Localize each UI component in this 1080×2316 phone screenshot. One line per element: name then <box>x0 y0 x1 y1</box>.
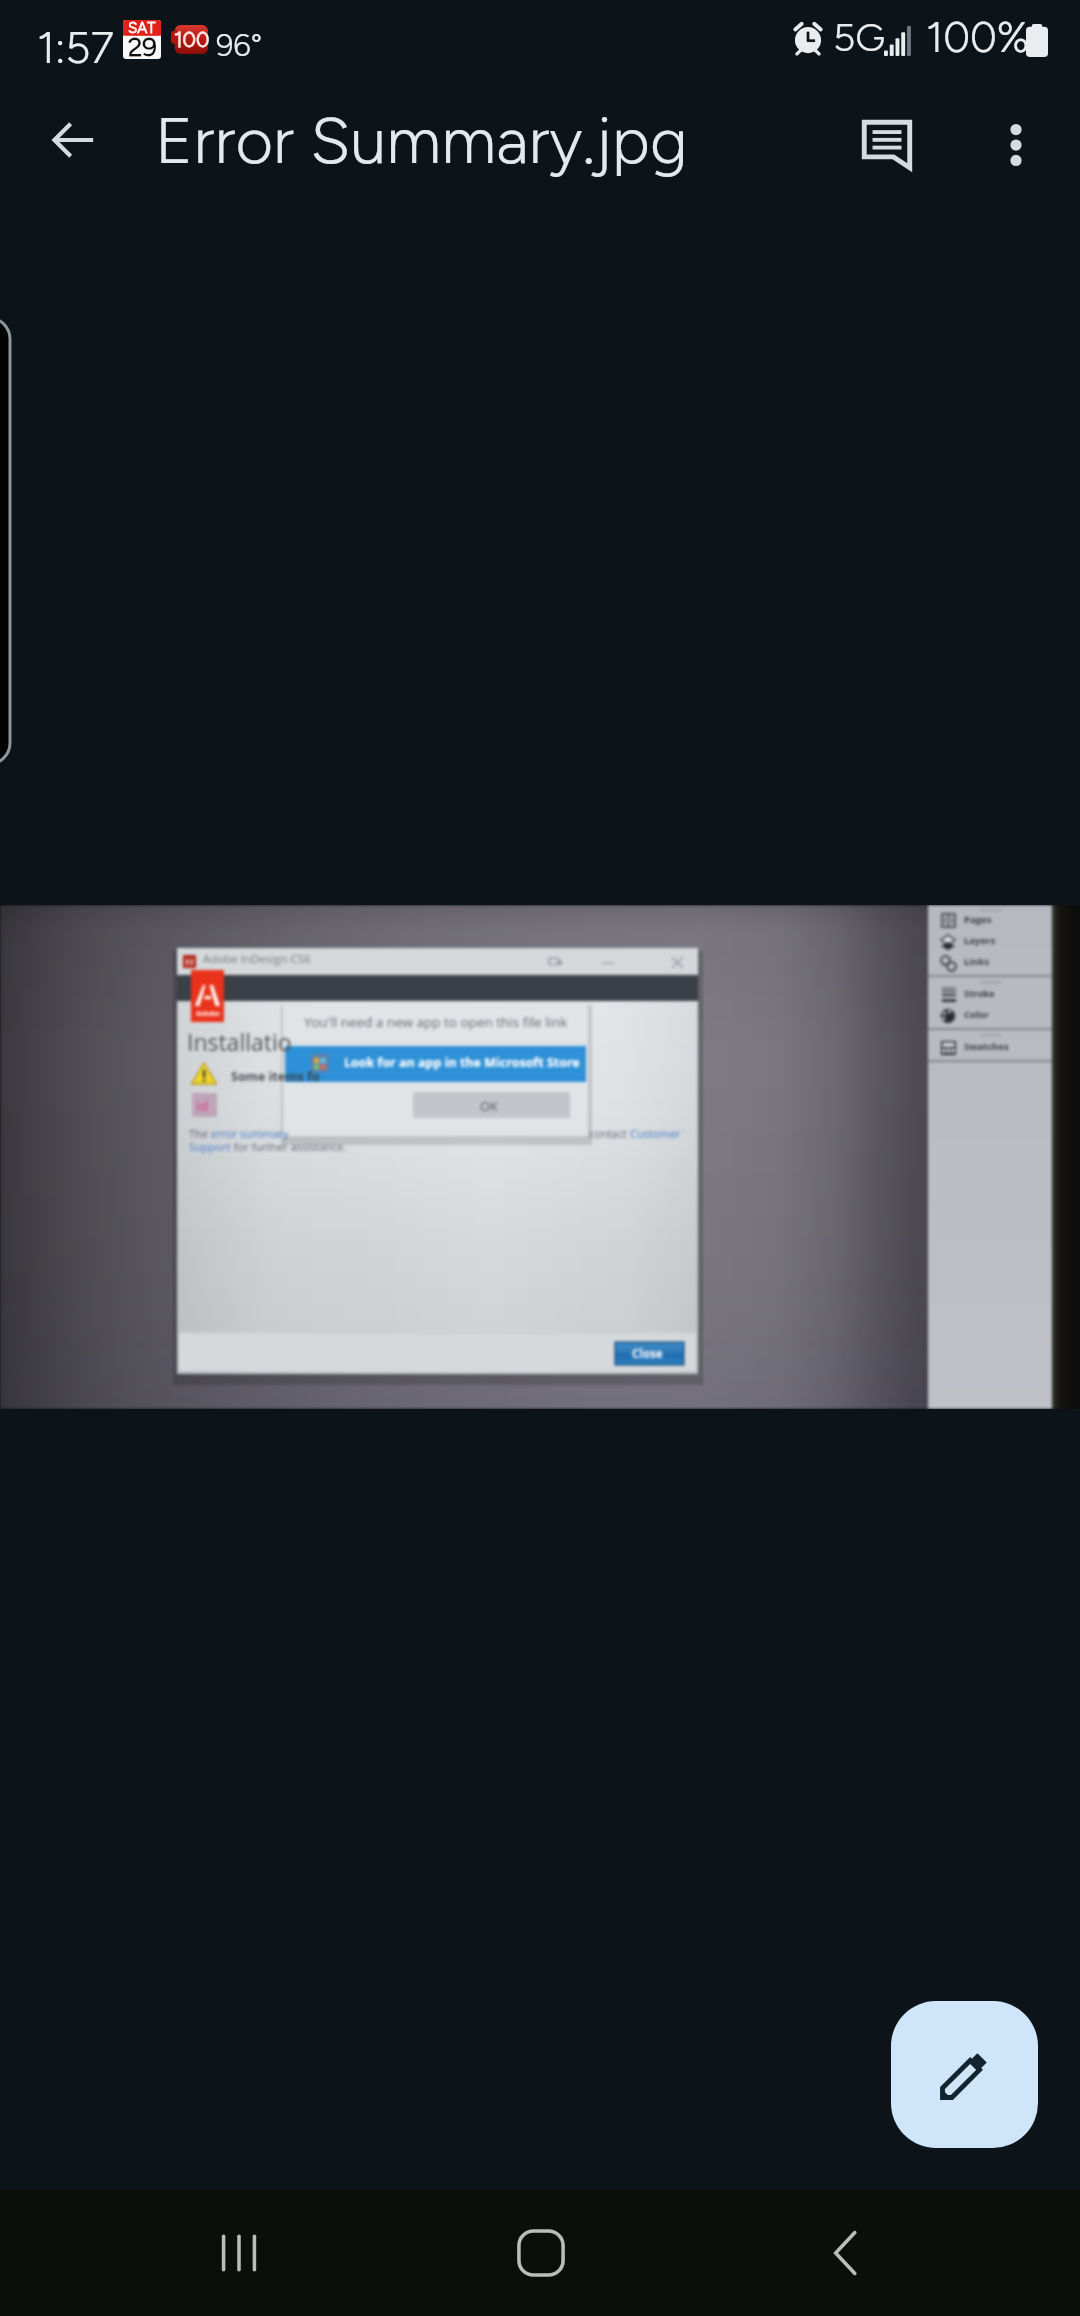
button[interactable]: Edit <box>891 2001 1038 2148</box>
button[interactable]: More options <box>970 99 1062 191</box>
staticText: Layers <box>964 934 996 947</box>
staticText: Color <box>964 1008 990 1021</box>
staticText: Support <box>189 1139 231 1154</box>
button[interactable]: Comments <box>839 97 935 193</box>
button[interactable]: Recent apps <box>184 2198 294 2308</box>
staticText: 96° <box>216 27 263 64</box>
staticText: Stroke <box>964 987 995 1000</box>
staticText: Links <box>964 955 990 968</box>
button[interactable]: Back <box>789 2198 899 2308</box>
staticText: SAT <box>128 19 156 37</box>
staticText: You'll need a new app to open this file … <box>304 1013 568 1031</box>
staticText: contact <box>589 1126 630 1141</box>
button[interactable]: Back <box>31 97 117 183</box>
staticText: Pages <box>964 913 992 926</box>
staticText: Adobe <box>196 1008 220 1018</box>
staticText: Id <box>196 1097 209 1115</box>
staticText: Some items fo <box>231 1068 320 1085</box>
staticText: Customer <box>630 1126 681 1141</box>
staticText: 29 <box>128 31 157 62</box>
staticText: Close <box>632 1346 663 1362</box>
staticText: Swatches <box>964 1040 1009 1053</box>
staticText: 1:57 <box>37 21 114 74</box>
staticText: 100 <box>174 27 210 52</box>
staticText: 5G <box>833 14 886 61</box>
staticText: Adobe InDesign CS6 <box>203 951 311 967</box>
staticText: Look for an app in the Microsoft Store <box>344 1054 580 1071</box>
staticText: Error Summary.jpg <box>155 101 688 179</box>
staticText: 100% <box>926 12 1030 62</box>
staticText: The <box>189 1126 211 1141</box>
button[interactable]: Home <box>486 2198 596 2308</box>
staticText: for further assistance. <box>231 1139 347 1154</box>
staticText: OK <box>480 1097 499 1115</box>
staticText: Installatio <box>187 1026 292 1057</box>
staticText: error summary <box>211 1126 289 1141</box>
